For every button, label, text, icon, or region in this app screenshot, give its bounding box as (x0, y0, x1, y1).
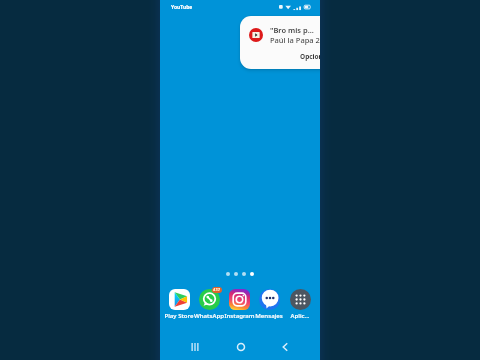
staticText: YouTube (171, 4, 193, 11)
button[interactable]: Recents (182, 334, 208, 360)
button[interactable]: 417 (193, 289, 225, 319)
staticText: Instagram (224, 311, 255, 319)
staticText: Opcion (300, 52, 320, 61)
staticText: Mensajes (255, 311, 283, 319)
button[interactable]: Back (272, 334, 298, 360)
staticText: Play Store (164, 311, 194, 319)
staticText: "Bro mis p... (270, 25, 314, 35)
staticText: Aplic... (290, 311, 310, 319)
staticText: 417 (213, 287, 221, 293)
button[interactable]: "Bro mis p... (240, 16, 320, 69)
staticText: Paúl la Papa 2 (270, 35, 320, 45)
staticText: WhatsApp (194, 311, 224, 319)
button[interactable]: Instagram (223, 289, 255, 319)
button[interactable]: Mensajes (253, 289, 285, 319)
button[interactable]: Aplic... (284, 289, 316, 319)
button[interactable]: Play Store (163, 289, 195, 319)
button[interactable]: Home (228, 334, 254, 360)
